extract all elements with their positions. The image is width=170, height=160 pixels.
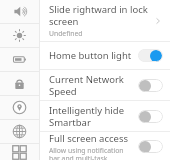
button[interactable]: Off: [138, 140, 163, 153]
staticText: Home button light: [49, 49, 132, 62]
staticText: Undefined: [49, 29, 83, 38]
button[interactable]: Full screen access: [40, 132, 170, 160]
staticText: Full screen access: [49, 132, 128, 145]
staticText: Allow using notification bar and multi-t…: [49, 146, 124, 160]
button[interactable]: Apps: [0, 144, 39, 160]
button[interactable]: Home button light: [40, 42, 170, 69]
button[interactable]: Volume: [0, 0, 39, 23]
button[interactable]: Intelligently hide Smartbar: [40, 101, 170, 131]
button[interactable]: Lock: [0, 72, 39, 95]
button[interactable]: Off: [138, 110, 163, 123]
button[interactable]: Brightness: [0, 24, 39, 47]
button[interactable]: On: [138, 49, 163, 62]
button[interactable]: Off: [138, 79, 163, 92]
staticText: Intelligently hide Smartbar: [49, 104, 125, 129]
button[interactable]: Current Network Speed: [40, 70, 170, 100]
button[interactable]: Network: [0, 120, 39, 143]
other: Open: [152, 15, 164, 27]
button[interactable]: Battery: [0, 48, 39, 71]
staticText: Current Network Speed: [49, 73, 124, 98]
button[interactable]: Location: [0, 96, 39, 119]
button[interactable]: Slide rightward in lock screen: [40, 0, 170, 41]
staticText: Slide rightward in lock screen: [49, 3, 148, 28]
